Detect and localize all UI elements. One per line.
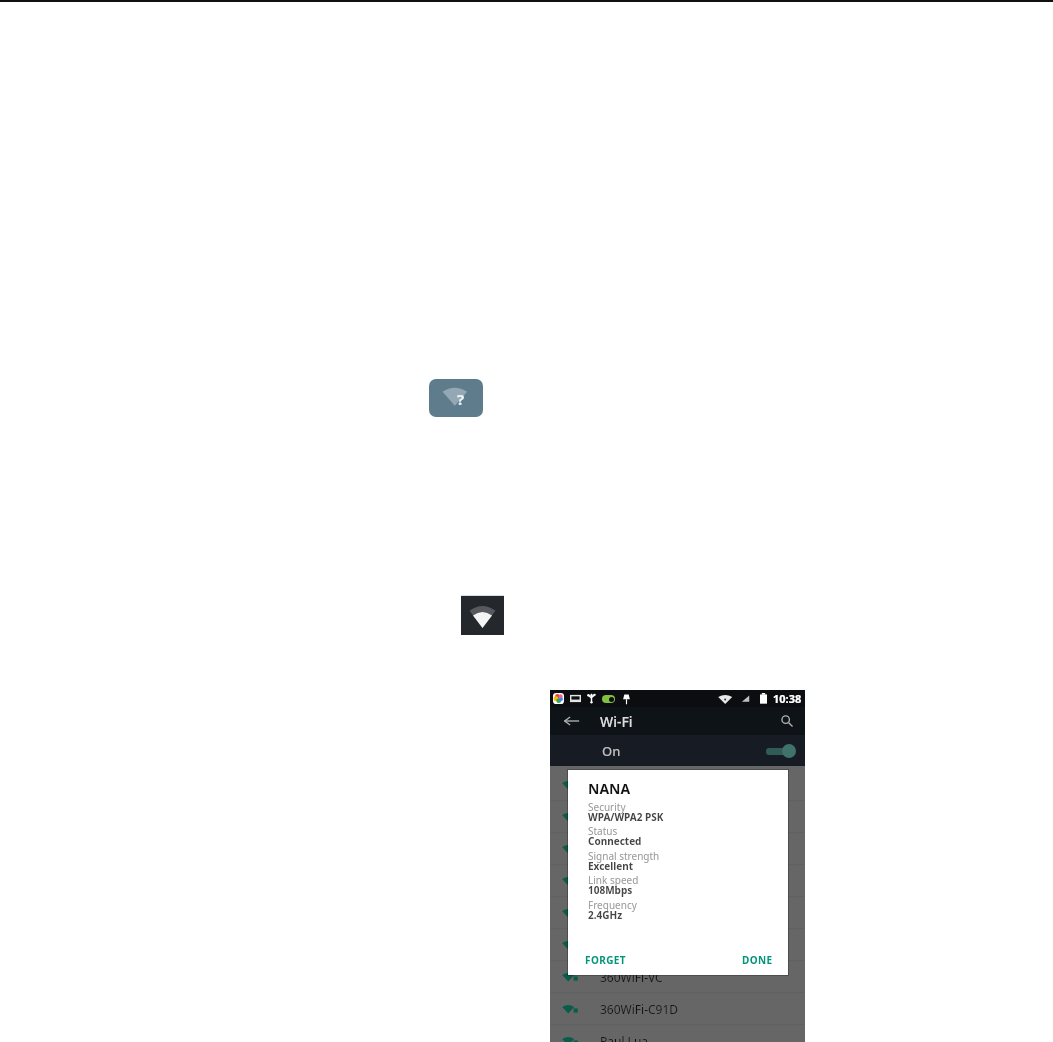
button[interactable]: DONE bbox=[742, 953, 773, 967]
staticText: WPA/WPA2 PSK bbox=[588, 810, 664, 824]
button[interactable]: HUAWEI-8C2D bbox=[550, 897, 805, 929]
staticText: Wi-Fi bbox=[600, 712, 633, 731]
button[interactable]: 360WiFi-VC bbox=[550, 961, 805, 993]
button[interactable]: Xiaomi_B1F3 bbox=[550, 801, 805, 833]
staticText: 360WiFi-C91D bbox=[600, 1001, 679, 1017]
staticText: 10:38 bbox=[773, 691, 802, 706]
staticText: Status bbox=[588, 824, 618, 838]
button[interactable]: Search bbox=[773, 707, 801, 735]
staticText: Excellent bbox=[588, 859, 634, 873]
staticText: TP-LINK_4C0A bbox=[600, 841, 680, 857]
staticText: On bbox=[602, 742, 621, 760]
button[interactable]: Wi-Fi signal icon bbox=[461, 595, 504, 635]
button[interactable]: 360WiFi-C91D bbox=[550, 993, 805, 1025]
staticText: NANA bbox=[600, 777, 634, 793]
button[interactable]: Paul Lua bbox=[550, 1025, 805, 1042]
staticText: Security bbox=[588, 800, 626, 814]
staticText: 108Mbps bbox=[588, 883, 633, 897]
staticText: Paul Lua bbox=[600, 1033, 649, 1042]
button[interactable]: Wi-Fi unknown network icon bbox=[429, 379, 483, 417]
button[interactable]: Tenda_5A31 bbox=[550, 929, 805, 961]
staticText: ? bbox=[457, 389, 465, 409]
staticText: FORGET bbox=[585, 953, 626, 967]
button[interactable]: TP-LINK_4C0A bbox=[550, 833, 805, 865]
staticText: HUAWEI-8C2D bbox=[600, 905, 681, 921]
staticText: 2.4GHz bbox=[588, 908, 623, 922]
button[interactable]: NANA bbox=[550, 769, 805, 801]
button[interactable]: On bbox=[550, 735, 805, 766]
staticText: NANA bbox=[588, 779, 631, 798]
button[interactable]: FORGET bbox=[585, 953, 626, 967]
button[interactable]: ChinaNet-uFsa bbox=[550, 865, 805, 897]
staticText: DONE bbox=[742, 953, 773, 967]
staticText: Connected bbox=[588, 834, 642, 848]
staticText: Link speed bbox=[588, 873, 639, 887]
staticText: ChinaNet-uFsa bbox=[600, 873, 683, 889]
staticText: Signal strength bbox=[588, 849, 660, 863]
button[interactable]: Back bbox=[550, 707, 588, 735]
staticText: 360WiFi-VC bbox=[600, 969, 663, 985]
staticText: Frequency bbox=[588, 898, 637, 912]
staticText: Xiaomi_B1F3 bbox=[600, 809, 672, 825]
